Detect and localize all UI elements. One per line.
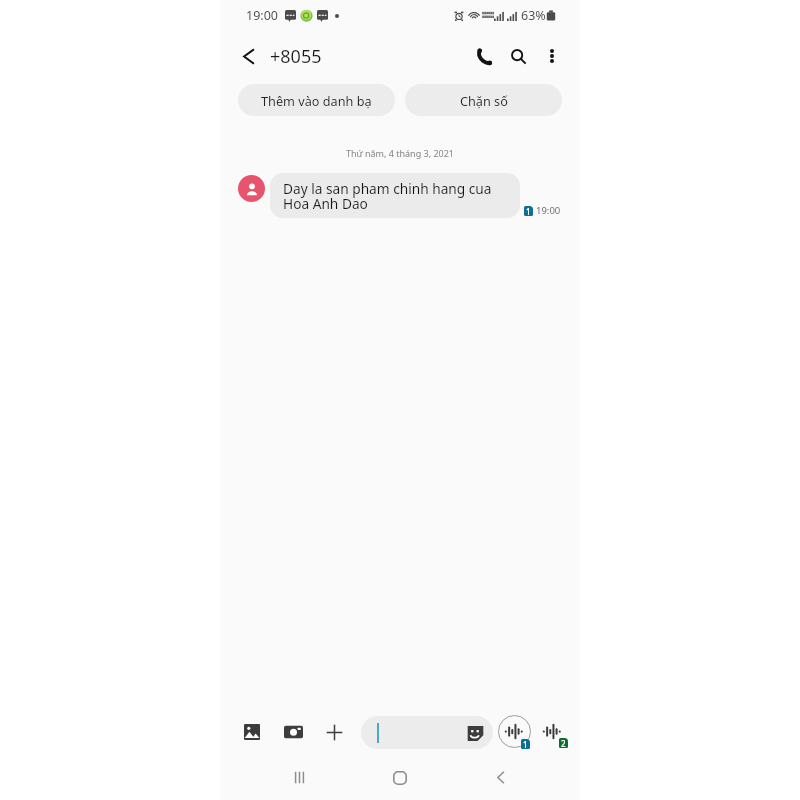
- button[interactable]: Back: [230, 38, 266, 74]
- button[interactable]: Call: [468, 39, 502, 73]
- button[interactable]: Back: [478, 755, 522, 800]
- button[interactable]: Stickers: [466, 724, 484, 742]
- button[interactable]: Thêm vào danh bạ: [238, 84, 395, 116]
- button[interactable]: More options: [535, 39, 569, 73]
- staticText: 2: [561, 738, 566, 748]
- button[interactable]: Voice message SIM 1: [498, 715, 531, 748]
- staticText: +8055: [270, 44, 322, 69]
- staticText: Thứ năm, 4 tháng 3, 2021: [220, 147, 580, 159]
- button[interactable]: Chặn số: [405, 84, 562, 116]
- button[interactable]: Recents: [277, 755, 321, 800]
- button[interactable]: Stickers: [361, 716, 493, 749]
- button[interactable]: Camera: [280, 704, 306, 760]
- button[interactable]: Add attachment: [321, 704, 347, 760]
- staticText: Day la san pham chinh hang cua Hoa Anh D…: [283, 179, 492, 213]
- staticText: 19:00: [246, 7, 278, 24]
- button[interactable]: Home: [378, 755, 422, 800]
- button[interactable]: Voice message SIM 2: [542, 721, 563, 742]
- staticText: Thêm vào danh bạ: [261, 92, 372, 109]
- staticText: Chặn số: [460, 92, 508, 109]
- button[interactable]: Day la san pham chinh hang cua Hoa Anh D…: [270, 173, 520, 218]
- button[interactable]: Gallery: [239, 704, 265, 760]
- button[interactable]: Search: [501, 39, 535, 73]
- staticText: 1: [523, 739, 528, 749]
- staticText: 19:00: [536, 204, 561, 217]
- staticText: 63%: [521, 7, 546, 24]
- staticText: 1: [526, 206, 531, 216]
